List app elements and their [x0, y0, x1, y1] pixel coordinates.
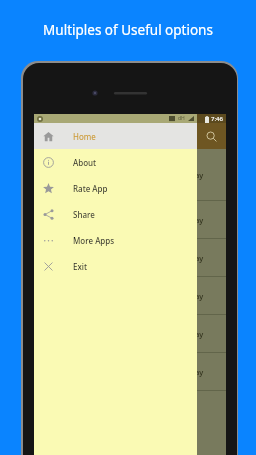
staticText: 7:46 — [211, 115, 223, 123]
staticText: Rate App — [73, 183, 108, 194]
button[interactable]: Share — [34, 201, 197, 227]
staticText: Today — [182, 291, 204, 301]
button[interactable]: About — [34, 149, 197, 175]
button[interactable]: Today — [34, 239, 226, 277]
button[interactable]: Today — [34, 277, 226, 315]
button[interactable]: Today — [34, 353, 226, 391]
staticText: More Apps — [73, 235, 115, 246]
staticText: Today — [182, 367, 204, 377]
staticText: Today — [182, 215, 204, 225]
staticText: Multiples of Useful options — [0, 21, 256, 39]
button[interactable]: Search — [201, 126, 221, 146]
staticText: dH — [178, 115, 185, 122]
staticText: Exit — [73, 261, 88, 272]
staticText: Today — [182, 253, 204, 263]
staticText: Today — [182, 170, 204, 180]
button[interactable]: More Apps — [34, 227, 197, 253]
button[interactable]: Today — [34, 149, 226, 201]
button[interactable]: Today — [34, 315, 226, 353]
button[interactable]: Exit — [34, 253, 197, 279]
button[interactable]: Today — [34, 201, 226, 239]
staticText: Home — [73, 131, 96, 142]
button[interactable]: Home — [34, 123, 197, 149]
staticText: Today — [182, 329, 204, 339]
button[interactable]: Rate App — [34, 175, 197, 201]
staticText: About — [73, 157, 97, 168]
staticText: Share — [73, 209, 95, 220]
